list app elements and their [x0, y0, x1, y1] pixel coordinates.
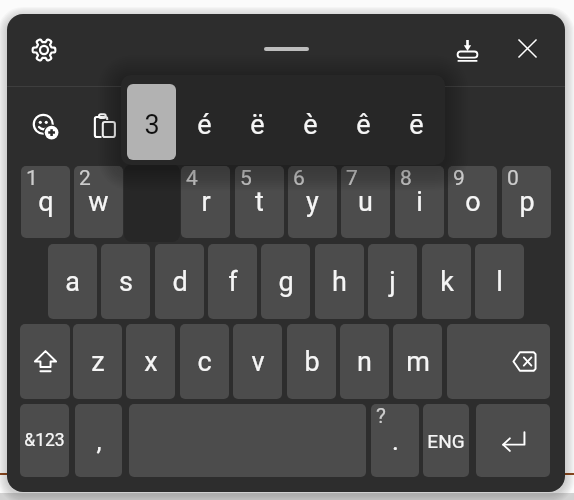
button[interactable]: f [208, 244, 257, 319]
button[interactable]: c [180, 324, 229, 399]
button[interactable]: 3 [127, 84, 176, 160]
staticText: 6 [293, 166, 305, 191]
button[interactable]: n [340, 324, 389, 399]
staticText: w [88, 186, 109, 218]
staticText: é [197, 109, 212, 141]
button[interactable]: 9 [448, 166, 497, 238]
staticText: z [91, 346, 105, 378]
staticText: n [357, 346, 372, 378]
button[interactable]: h [315, 244, 364, 319]
staticText: f [228, 266, 238, 298]
button[interactable]: ē [390, 84, 443, 160]
button[interactable]: k [422, 244, 471, 319]
staticText: m [406, 346, 430, 378]
staticText: b [304, 346, 320, 378]
staticText: p [519, 186, 535, 218]
button[interactable]: Keyboard settings [23, 29, 64, 70]
button[interactable]: j [368, 244, 417, 319]
button[interactable]: , [75, 404, 122, 477]
staticText: 9 [453, 166, 465, 191]
button[interactable]: g [261, 244, 310, 319]
button[interactable]: v [233, 324, 282, 399]
staticText: &123 [24, 430, 65, 451]
button[interactable] [20, 324, 70, 399]
button[interactable]: b [287, 324, 336, 399]
button[interactable]: 1 [21, 166, 70, 238]
staticText: l [496, 266, 503, 298]
staticText: 7 [346, 166, 358, 191]
button[interactable]: 2 [74, 166, 123, 238]
button[interactable]: 8 [395, 166, 444, 238]
button[interactable]: ê [337, 84, 390, 160]
button[interactable]: l [475, 244, 524, 319]
staticText: ë [250, 109, 265, 141]
staticText: q [38, 186, 54, 218]
button[interactable]: Dock keyboard [447, 30, 488, 71]
button[interactable]: m [393, 324, 442, 399]
button[interactable]: ? [371, 404, 419, 477]
staticText: h [332, 266, 347, 298]
staticText: 8 [400, 166, 412, 191]
button[interactable]: d [155, 244, 204, 319]
staticText: v [251, 346, 265, 378]
button[interactable]: 5 [235, 166, 284, 238]
button[interactable]: é [178, 84, 231, 160]
staticText: g [278, 266, 294, 298]
staticText: d [172, 266, 188, 298]
button[interactable]: ë [231, 84, 284, 160]
staticText: 1 [26, 166, 38, 191]
button[interactable]: 4 [181, 166, 230, 238]
button[interactable]: Emoji [25, 106, 66, 147]
staticText: t [255, 186, 264, 218]
button[interactable]: Close keyboard [507, 28, 548, 69]
button[interactable]: 7 [341, 166, 390, 238]
staticText: i [416, 186, 423, 218]
button[interactable] [476, 404, 550, 477]
staticText: o [465, 186, 481, 218]
button[interactable]: a [48, 244, 97, 319]
button[interactable]: x [126, 324, 175, 399]
staticText: ê [356, 109, 371, 141]
staticText: 3 [144, 109, 160, 141]
button[interactable]: &123 [20, 404, 69, 477]
staticText: s [119, 266, 133, 298]
staticText: x [144, 346, 158, 378]
staticText: ē [409, 109, 424, 141]
staticText: 4 [186, 166, 198, 191]
staticText: u [358, 186, 373, 218]
staticText: k [440, 266, 454, 298]
staticText: ? [376, 404, 386, 429]
button[interactable]: s [101, 244, 150, 319]
staticText: 2 [79, 166, 91, 191]
button[interactable]: è [284, 84, 337, 160]
staticText: c [197, 346, 212, 378]
button[interactable]: 0 [502, 166, 551, 238]
staticText: 0 [507, 166, 519, 191]
staticText: ENG [427, 430, 465, 452]
button[interactable]: z [73, 324, 122, 399]
staticText: j [389, 266, 396, 298]
staticText: r [201, 186, 211, 218]
staticText: 5 [240, 166, 252, 191]
button[interactable] [447, 324, 550, 399]
button[interactable]: 6 [288, 166, 337, 238]
button[interactable]: Clipboard [84, 105, 125, 146]
staticText: . [392, 426, 399, 456]
staticText: y [306, 186, 319, 218]
button[interactable]: Resize keyboard [255, 36, 317, 62]
button[interactable]: ENG [423, 404, 469, 477]
staticText: , [96, 426, 102, 456]
staticText: a [65, 266, 80, 298]
staticText: è [303, 109, 318, 141]
